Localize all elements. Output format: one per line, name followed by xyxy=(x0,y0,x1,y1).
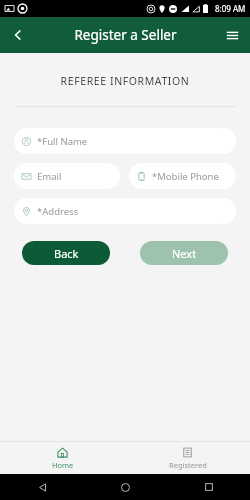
staticText: Email xyxy=(37,170,62,183)
button[interactable]: *Address xyxy=(14,198,236,224)
button[interactable]: Back xyxy=(0,17,36,53)
button[interactable]: Registered xyxy=(125,442,250,474)
staticText: Back xyxy=(54,246,79,261)
button[interactable]: Back xyxy=(22,241,110,265)
staticText: 8:09 AM xyxy=(215,3,246,14)
button[interactable]: Back xyxy=(0,474,84,500)
staticText: Registered xyxy=(169,460,207,470)
staticText: *Address xyxy=(37,205,79,218)
button[interactable]: Next xyxy=(140,241,228,265)
staticText: *Full Name xyxy=(37,135,88,148)
staticText: REFEREE INFORMATION xyxy=(0,74,250,88)
button[interactable]: Menu xyxy=(214,17,250,53)
button[interactable]: Email xyxy=(14,163,120,189)
button[interactable]: Home xyxy=(84,474,167,500)
button[interactable]: *Full Name xyxy=(14,128,236,154)
button[interactable]: *Mobile Phone xyxy=(129,163,236,189)
staticText: Register a Seller xyxy=(74,26,177,44)
button[interactable]: Home xyxy=(0,442,125,474)
staticText: Home xyxy=(52,460,74,470)
button[interactable]: Recents xyxy=(167,474,250,500)
staticText: Next xyxy=(172,246,197,261)
staticText: *Mobile Phone xyxy=(152,170,219,183)
